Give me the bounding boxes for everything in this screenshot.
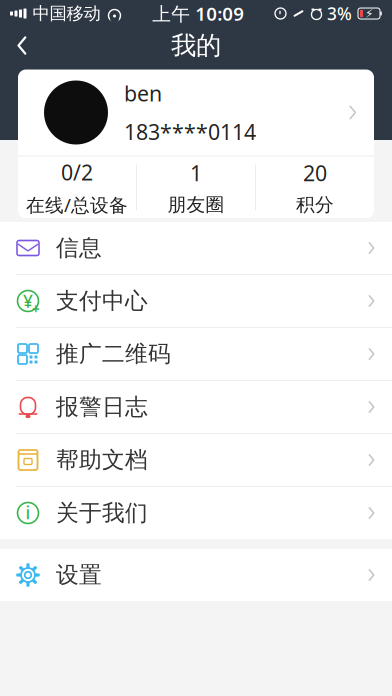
staticText: +	[32, 300, 40, 318]
button[interactable]: 20	[256, 149, 374, 226]
staticText: 信息	[56, 234, 102, 262]
staticText: 报警日志	[56, 393, 148, 421]
staticText: 183****0114	[124, 117, 256, 146]
staticText: 上午 10:09	[152, 1, 244, 26]
staticText: i	[25, 501, 30, 524]
staticText: 支付中心	[56, 287, 148, 315]
staticText: ⚡︎	[365, 7, 373, 20]
staticText: 我的	[171, 30, 221, 61]
staticText: ¥	[23, 289, 33, 312]
button[interactable]: 1	[137, 149, 255, 226]
button[interactable]: 0/2	[18, 148, 136, 227]
button[interactable]: i	[0, 487, 392, 539]
staticText: 关于我们	[56, 499, 148, 527]
button[interactable]: ben	[18, 69, 374, 218]
staticText: 20	[303, 159, 327, 187]
button[interactable]: 报警日志	[0, 381, 392, 433]
staticText: ben	[124, 79, 162, 107]
button[interactable]: 设置	[0, 549, 392, 601]
staticText: 帮助文档	[56, 446, 148, 474]
button[interactable]: Back	[0, 25, 44, 65]
staticText: 设置	[56, 561, 102, 589]
staticText: 3%	[327, 2, 352, 25]
staticText: 1	[190, 159, 202, 187]
staticText: 在线/总设备	[26, 192, 128, 217]
button[interactable]: 帮助文档	[0, 434, 392, 486]
button[interactable]: 信息	[0, 222, 392, 274]
staticText: 中国移动	[32, 3, 100, 24]
staticText: 积分	[296, 193, 334, 216]
staticText: 朋友圈	[167, 193, 224, 216]
staticText: 推广二维码	[56, 340, 171, 368]
staticText: 0/2	[61, 158, 93, 186]
button[interactable]: ¥	[0, 275, 392, 327]
button[interactable]: 推广二维码	[0, 328, 392, 380]
